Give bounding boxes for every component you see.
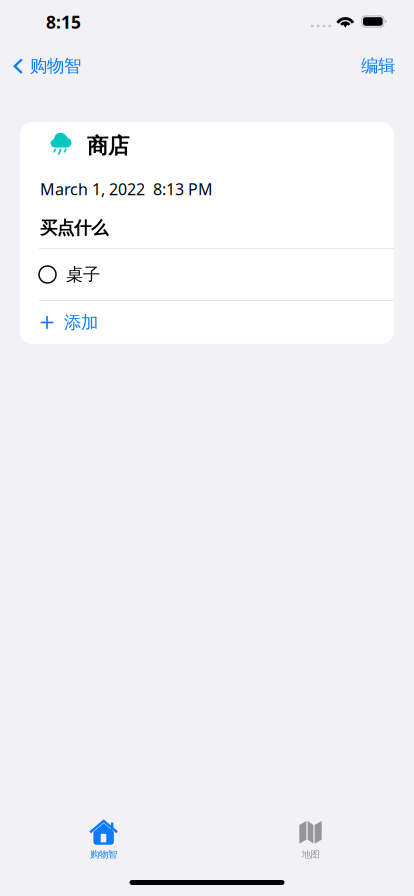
staticText: 购物智 bbox=[90, 849, 117, 860]
button[interactable]: 购物智 bbox=[0, 810, 207, 862]
button[interactable]: 购物智 bbox=[0, 44, 91, 88]
button[interactable]: 地图 bbox=[207, 810, 414, 862]
staticText: 编辑 bbox=[361, 55, 395, 77]
button[interactable]: 编辑 bbox=[349, 44, 414, 88]
staticText: 8:15 bbox=[46, 10, 81, 33]
button[interactable]: 添加 bbox=[20, 301, 394, 344]
button[interactable]: 桌子 bbox=[20, 249, 394, 301]
staticText: 购物智 bbox=[30, 55, 81, 77]
staticText: 买点什么 bbox=[40, 217, 108, 239]
staticText: 商店 bbox=[87, 133, 129, 159]
staticText: 添加 bbox=[64, 312, 98, 333]
staticText: March 1, 2022 8:13 PM bbox=[40, 178, 213, 200]
staticText: 地图 bbox=[301, 849, 319, 860]
staticText: 桌子 bbox=[66, 264, 100, 285]
